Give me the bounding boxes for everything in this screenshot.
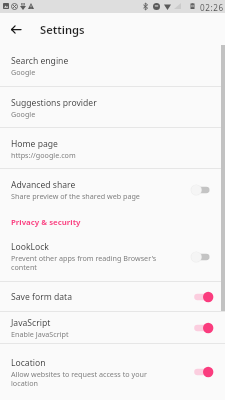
button[interactable]: Back — [4, 18, 27, 41]
button[interactable]: Search engine — [0, 44, 225, 87]
staticText: 02:26 — [200, 2, 224, 13]
button[interactable]: Toggle Save form data — [188, 289, 217, 305]
staticText: Search engine — [11, 55, 69, 67]
staticText: JavaScript — [11, 317, 51, 329]
staticText: https://google.com — [11, 150, 76, 160]
button[interactable]: Advanced share — [0, 169, 225, 210]
staticText: Advanced share — [11, 179, 76, 191]
button[interactable]: Toggle JavaScript — [188, 320, 217, 336]
staticText: Privacy & security — [11, 217, 81, 228]
button[interactable]: Location — [0, 344, 225, 400]
button[interactable]: Suggestions provider — [0, 87, 225, 128]
button[interactable]: JavaScript — [0, 312, 225, 344]
button[interactable]: Save form data — [0, 282, 225, 312]
staticText: Google — [11, 67, 36, 77]
staticText: Location — [11, 357, 46, 369]
staticText: Save form data — [11, 291, 72, 303]
staticText: Suggestions provider — [11, 97, 97, 109]
button[interactable]: Home page — [0, 128, 225, 169]
button[interactable]: LookLock — [0, 231, 225, 282]
staticText: Enable JavaScript — [11, 329, 69, 339]
staticText: Share preview of the shared web page — [11, 191, 140, 201]
button[interactable]: Toggle Location — [188, 364, 217, 380]
staticText: Allow websites to request access to your… — [11, 369, 163, 388]
staticText: Prevent other apps from reading Browser'… — [11, 253, 163, 272]
button[interactable]: Toggle Advanced share — [188, 182, 217, 198]
staticText: Settings — [40, 22, 85, 37]
button[interactable]: Toggle LookLock — [188, 249, 217, 265]
staticText: Google — [11, 109, 36, 119]
staticText: LookLock — [11, 241, 49, 253]
staticText: Home page — [11, 138, 58, 150]
